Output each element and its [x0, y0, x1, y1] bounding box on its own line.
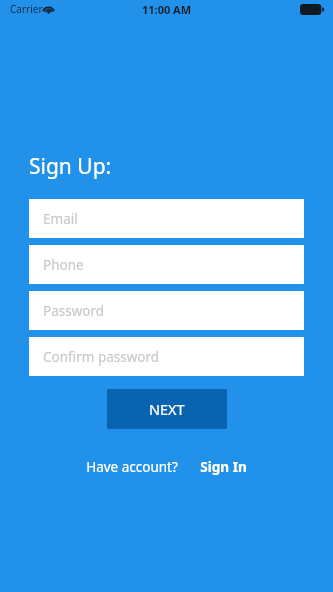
staticText: Sign Up:	[29, 152, 112, 181]
button[interactable]: Phone	[29, 245, 304, 284]
button[interactable]: Confirm password	[29, 337, 304, 376]
staticText: Email	[43, 210, 78, 228]
button[interactable]: NEXT	[107, 389, 227, 429]
button[interactable]: Password	[29, 291, 304, 330]
button[interactable]: Sign In	[200, 458, 247, 476]
staticText: 11:00 AM	[142, 2, 192, 17]
button[interactable]: Email	[29, 199, 304, 238]
staticText: Confirm password	[43, 348, 160, 366]
staticText: NEXT	[149, 399, 185, 419]
staticText: Sign In	[200, 458, 247, 476]
staticText: Password	[43, 302, 105, 320]
staticText: Phone	[43, 256, 84, 274]
staticText: Have account?	[86, 458, 178, 476]
staticText: Carrier	[10, 2, 43, 16]
